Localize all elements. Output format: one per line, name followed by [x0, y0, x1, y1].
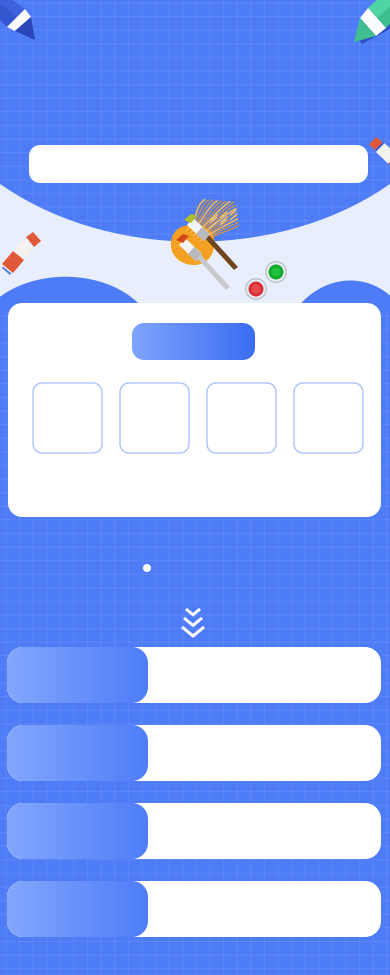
button[interactable]: Tool 1	[33, 383, 102, 453]
button[interactable]: List item	[7, 725, 381, 781]
button[interactable]: Tool 2	[120, 383, 189, 453]
button[interactable]: Tool 4	[294, 383, 363, 453]
button[interactable]: Tool 3	[207, 383, 276, 453]
button[interactable]: List item	[7, 647, 381, 703]
button[interactable]: Primary action	[132, 323, 255, 360]
button[interactable]: Search	[29, 145, 368, 183]
button[interactable]: List item	[7, 803, 381, 859]
button[interactable]: List item	[7, 881, 381, 937]
